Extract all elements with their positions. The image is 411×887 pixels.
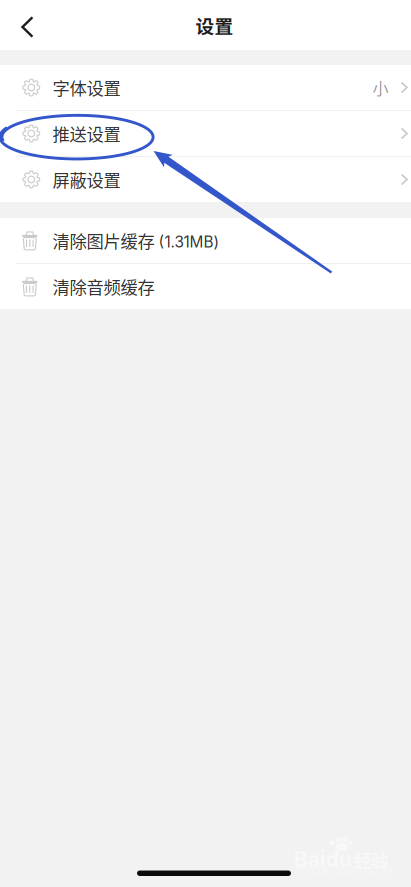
staticText: 推送设置 — [53, 121, 121, 146]
button[interactable]: 字体设置 — [0, 65, 411, 110]
button[interactable]: Back — [0, 0, 48, 50]
button[interactable]: 屏蔽设置 — [0, 157, 411, 202]
staticText: 清除图片缓存 (1.31MB) — [53, 228, 220, 253]
staticText: 清除音频缓存 — [53, 274, 155, 299]
button[interactable]: 清除音频缓存 — [0, 264, 411, 309]
button[interactable]: 推送设置 — [0, 111, 411, 156]
staticText: 屏蔽设置 — [53, 167, 121, 192]
staticText: 字体设置 — [53, 75, 121, 100]
staticText: 设置 — [195, 11, 233, 38]
staticText: 小 — [372, 76, 388, 99]
button[interactable]: 清除图片缓存 (1.31MB) — [0, 218, 411, 263]
